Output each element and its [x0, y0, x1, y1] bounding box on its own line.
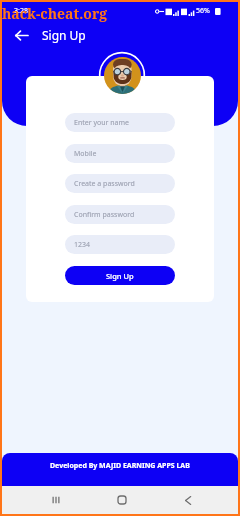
- button[interactable]: 1234: [65, 235, 175, 254]
- staticText: hack-cheat.org: [2, 4, 108, 23]
- staticText: Confirm password: [74, 210, 135, 220]
- button[interactable]: Back: [174, 486, 202, 514]
- button[interactable]: Home: [108, 486, 136, 514]
- button[interactable]: Recents: [42, 486, 70, 514]
- staticText: Enter your name: [74, 118, 129, 128]
- staticText: Sign Up: [42, 27, 86, 43]
- button[interactable]: Developed By MAJID EARNING APPS LAB: [2, 453, 238, 486]
- staticText: 1234: [74, 240, 91, 250]
- button[interactable]: Back: [10, 24, 32, 46]
- button[interactable]: Mobile: [65, 144, 175, 163]
- staticText: 56%: [196, 6, 210, 16]
- staticText: Sign Up: [106, 271, 134, 281]
- staticText: Mobile: [74, 149, 97, 159]
- staticText: Developed By MAJID EARNING APPS LAB: [50, 461, 190, 471]
- button[interactable]: Create a password: [65, 174, 175, 193]
- button[interactable]: Sign Up: [65, 266, 175, 285]
- button[interactable]: Enter your name: [65, 113, 175, 132]
- button[interactable]: Confirm password: [65, 205, 175, 224]
- staticText: 3:28: [14, 6, 28, 16]
- staticText: Create a password: [74, 179, 135, 189]
